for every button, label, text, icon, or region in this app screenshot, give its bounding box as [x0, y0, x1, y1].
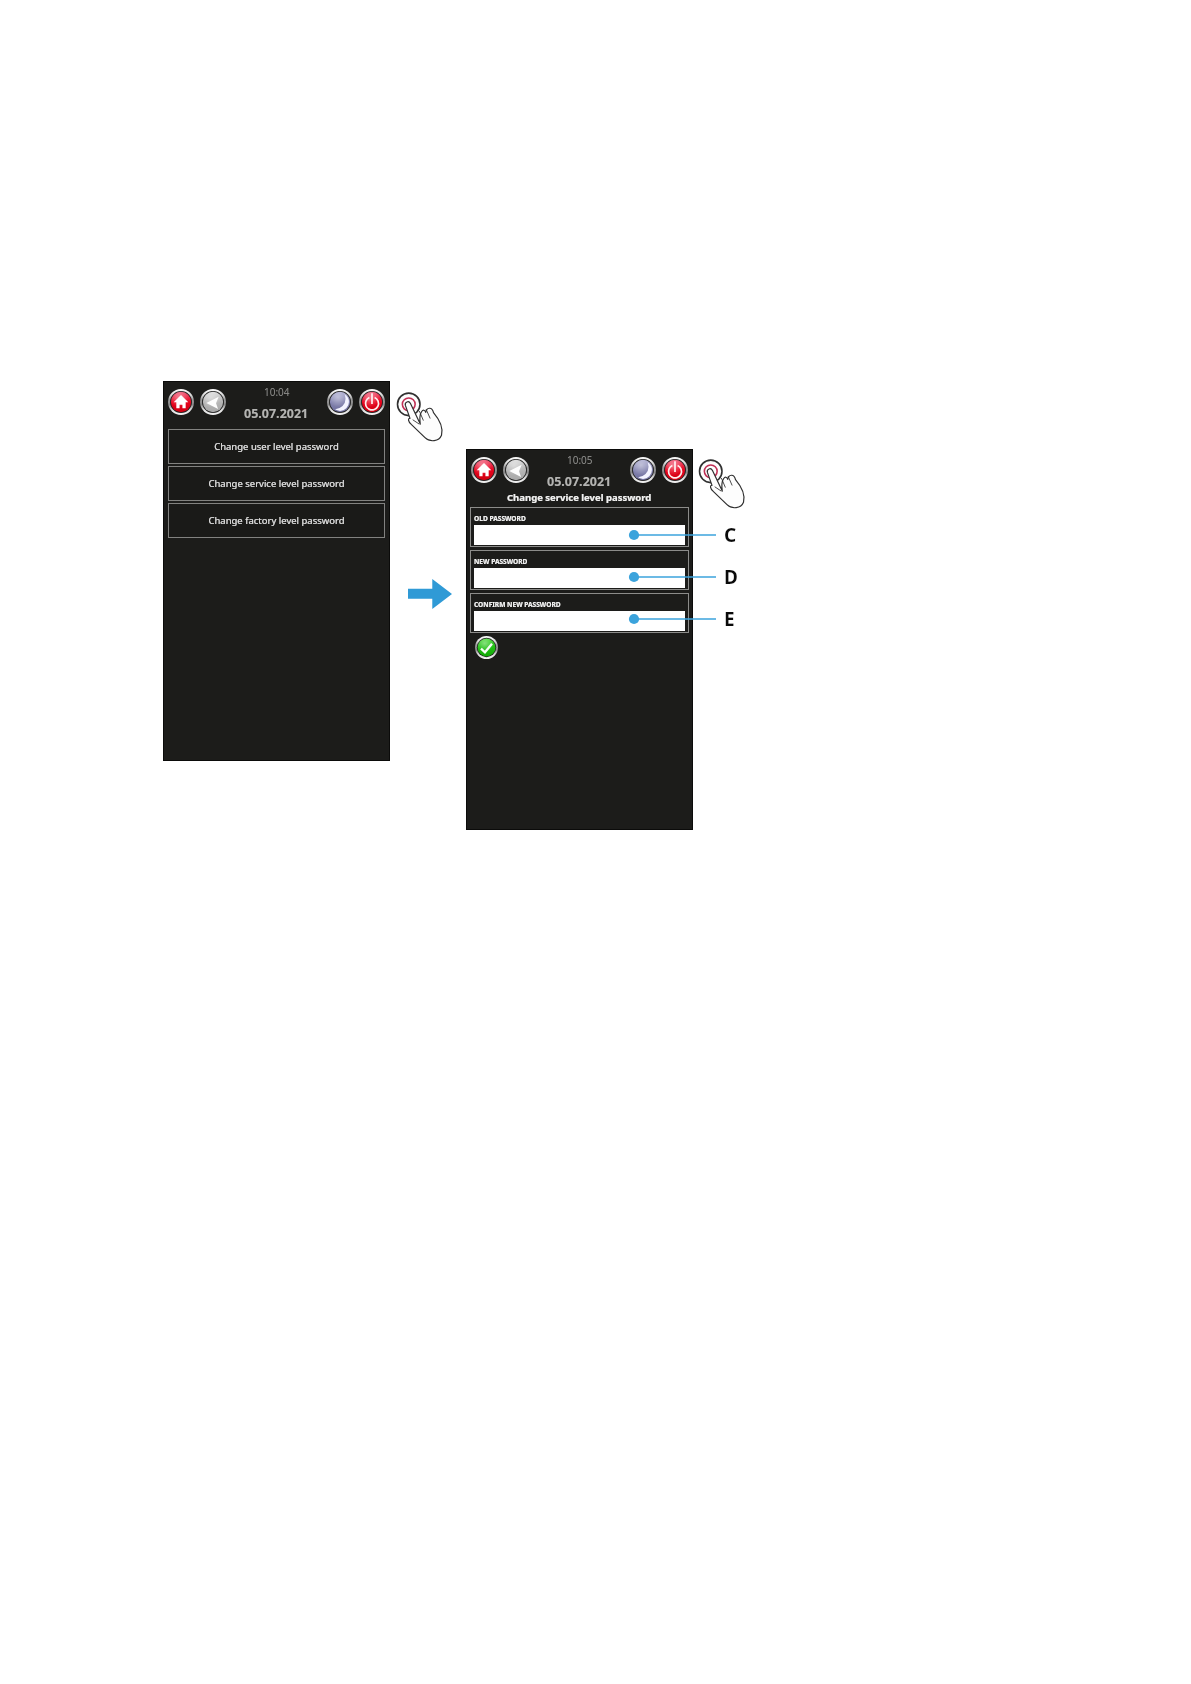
staticText: Change factory level password — [208, 514, 345, 527]
button[interactable]: Power — [662, 457, 688, 483]
staticText: 10:05 — [567, 453, 593, 467]
staticText: Change service level password — [507, 491, 652, 504]
staticText: OLD PASSWORD — [474, 514, 526, 523]
button[interactable]: Change service level password — [168, 466, 385, 501]
button[interactable]: Home — [168, 389, 194, 415]
staticText: NEW PASSWORD — [474, 557, 528, 566]
button[interactable]: Back — [200, 389, 226, 415]
button[interactable]: Night mode — [327, 389, 353, 415]
staticText: Change user level password — [214, 440, 339, 453]
staticText: 05.07.2021 — [547, 473, 612, 490]
staticText: Change service level password — [208, 477, 345, 490]
button[interactable]: Change user level password — [168, 429, 385, 464]
staticText: C — [724, 522, 737, 548]
staticText: 05.07.2021 — [244, 405, 309, 422]
button[interactable]: Power — [359, 389, 385, 415]
button[interactable]: Change factory level password — [168, 503, 385, 538]
staticText: D — [724, 564, 738, 590]
staticText: E — [724, 606, 735, 632]
button[interactable]: Home — [471, 457, 497, 483]
staticText: CONFIRM NEW PASSWORD — [474, 600, 561, 609]
staticText: 10:04 — [264, 385, 290, 399]
button[interactable]: Confirm — [475, 636, 498, 659]
button[interactable]: OLD PASSWORD — [470, 507, 689, 547]
button[interactable]: CONFIRM NEW PASSWORD — [470, 593, 689, 633]
button[interactable]: Night mode — [630, 457, 656, 483]
button[interactable]: Back — [503, 457, 529, 483]
button[interactable]: NEW PASSWORD — [470, 550, 689, 590]
